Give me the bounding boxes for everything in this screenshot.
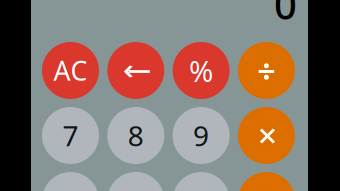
button[interactable]: 9: [173, 107, 230, 164]
button[interactable]: 4: [42, 172, 99, 191]
button[interactable]: 7: [42, 107, 99, 164]
button[interactable]: %: [173, 42, 230, 99]
staticText: AC: [53, 53, 87, 88]
button[interactable]: Delete: [107, 42, 164, 99]
button[interactable]: 8: [107, 107, 164, 164]
staticText: 8: [128, 117, 144, 154]
button[interactable]: 6: [173, 172, 230, 191]
staticText: 9: [193, 117, 209, 154]
staticText: 7: [62, 117, 78, 154]
button[interactable]: 5: [107, 172, 164, 191]
button[interactable]: Divide: [238, 42, 295, 99]
button[interactable]: Multiply: [238, 107, 295, 164]
button[interactable]: Subtract: [238, 172, 295, 191]
staticText: %: [189, 51, 213, 90]
staticText: 0: [274, 0, 297, 30]
button[interactable]: AC: [42, 42, 99, 99]
